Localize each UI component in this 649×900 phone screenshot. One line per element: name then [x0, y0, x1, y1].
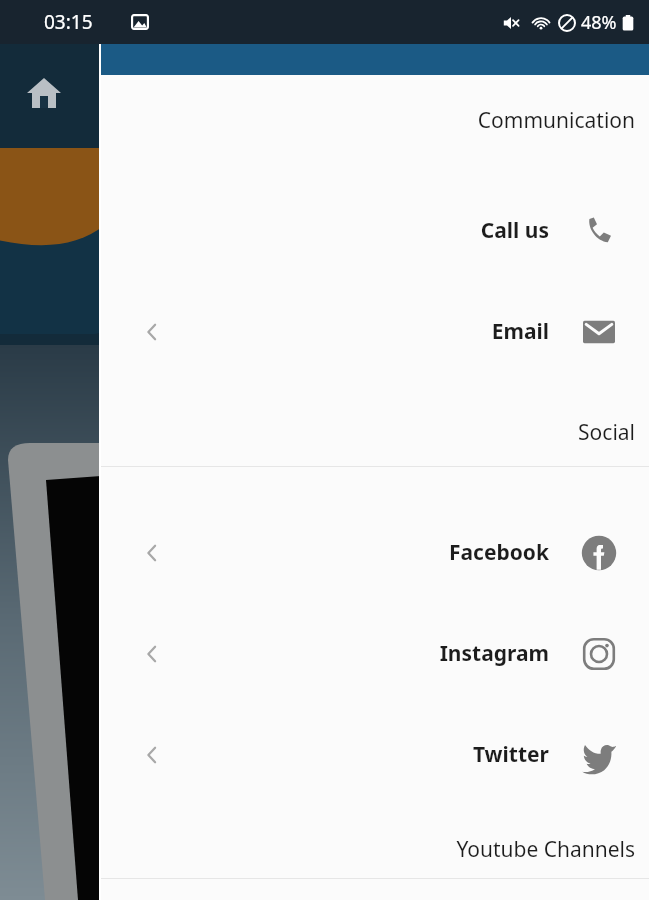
button[interactable]: Call us — [101, 180, 649, 281]
staticText: Youtube Channels — [456, 835, 635, 864]
staticText: Social — [578, 418, 635, 447]
staticText: Twitter — [202, 740, 549, 769]
staticText: Instagram — [202, 639, 549, 668]
staticText: 03:15 — [44, 9, 93, 35]
button[interactable]: Facebook — [101, 502, 649, 603]
staticText: Facebook — [202, 538, 549, 567]
button[interactable]: Twitter — [101, 704, 649, 805]
button[interactable]: Instagram — [101, 603, 649, 704]
staticText: Email — [202, 317, 549, 346]
staticText: Call us — [202, 216, 549, 245]
staticText: 48% — [581, 10, 617, 35]
button[interactable]: Email — [101, 281, 649, 382]
staticText: Communication — [477, 106, 635, 135]
